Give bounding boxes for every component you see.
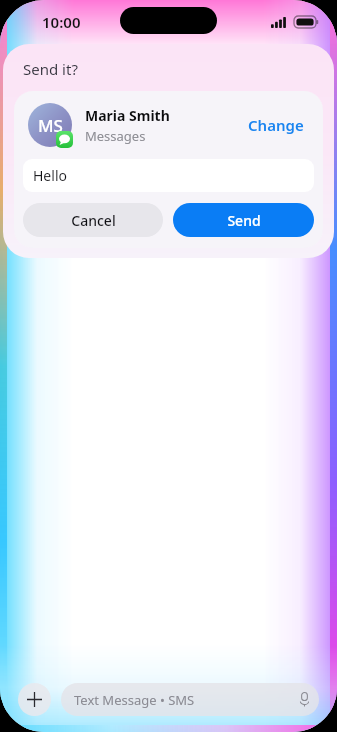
button[interactable]: Text Message • SMS [61,683,319,716]
button[interactable]: Add attachment [18,683,51,716]
button[interactable]: MS [14,91,323,159]
staticText: Maria Smith [85,106,170,125]
staticText: 10:00 [42,12,81,32]
button[interactable]: Hello [23,159,314,192]
staticText: Text Message • SMS [74,691,299,709]
button[interactable]: Send [173,203,314,237]
staticText: Send [227,211,261,230]
staticText: Change [248,115,304,135]
staticText: Hello [33,166,67,185]
button[interactable]: Cancel [23,203,163,237]
staticText: MS [38,114,63,137]
staticText: Cancel [71,211,116,230]
other: Dictate [299,692,310,707]
button[interactable]: Change [242,109,310,141]
staticText: Send it? [23,59,78,79]
staticText: Messages [85,127,146,145]
